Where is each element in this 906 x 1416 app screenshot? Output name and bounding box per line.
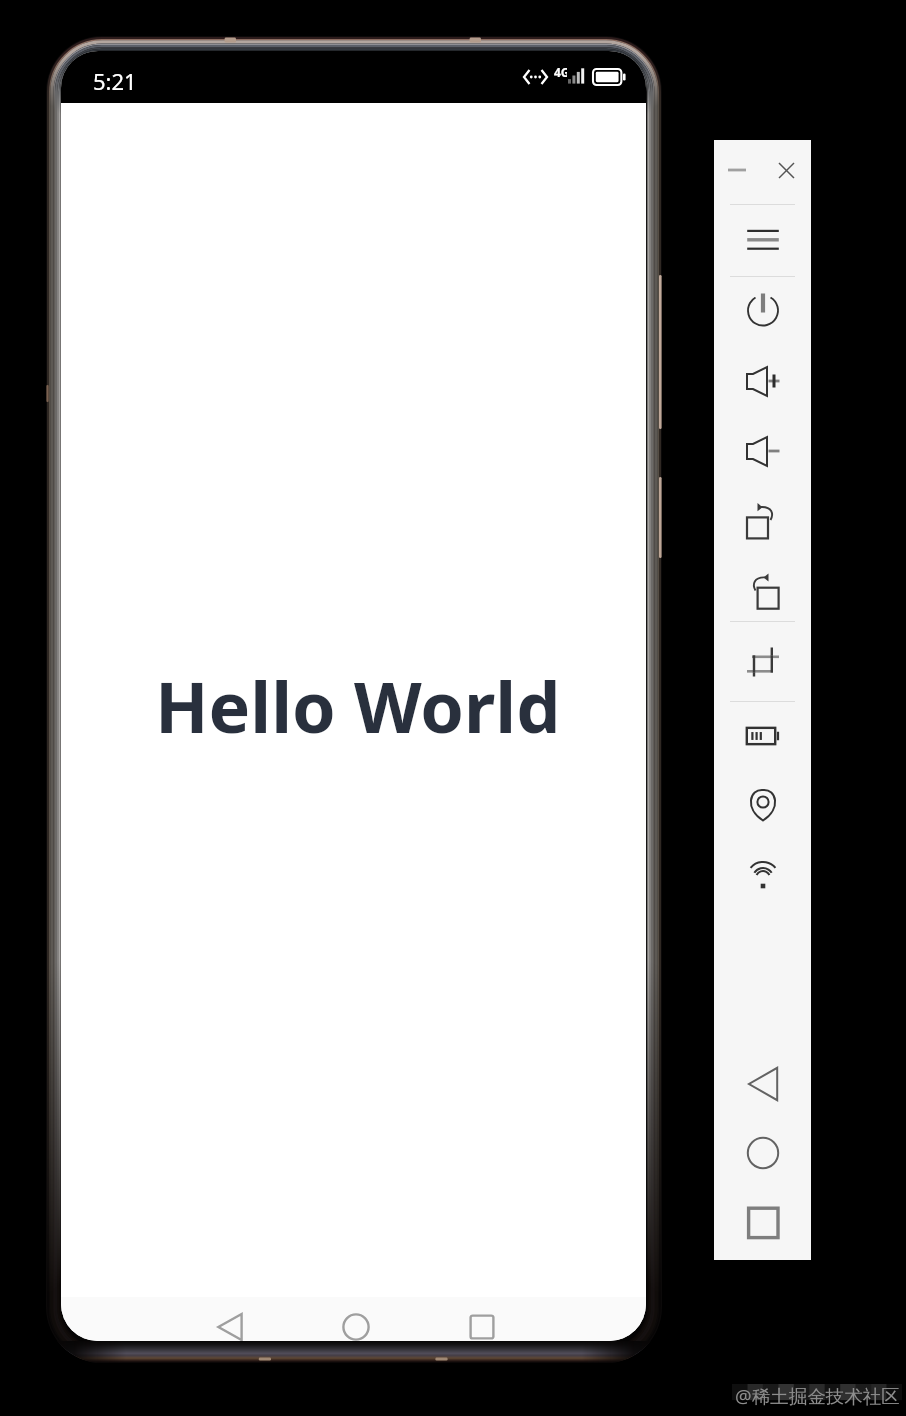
button[interactable]: Power [731,278,795,342]
button[interactable]: Volume up [731,349,795,413]
staticText: 4G [554,64,567,80]
staticText: Hello World [155,658,561,753]
button[interactable]: Recents [731,1191,795,1255]
staticText: 5:21 [93,66,137,96]
button[interactable]: Back [204,1305,256,1341]
button[interactable]: Location [731,771,795,835]
button[interactable]: Rotate right [731,489,795,553]
button[interactable]: Menu [731,207,795,271]
button[interactable]: Close [769,153,803,187]
button[interactable]: Screenshot [731,627,795,691]
button[interactable]: Volume down [731,419,795,483]
button[interactable]: Back [731,1052,795,1116]
button[interactable]: Home [731,1121,795,1185]
button[interactable]: Battery [731,704,795,768]
button[interactable]: Minimize [720,153,754,187]
button[interactable]: Cellular [731,841,795,905]
button[interactable]: Home [330,1305,382,1341]
button[interactable]: Rotate left [731,557,795,621]
staticText: @稀土掘金技术社区 [735,1383,900,1408]
button[interactable]: Recents [456,1305,508,1341]
